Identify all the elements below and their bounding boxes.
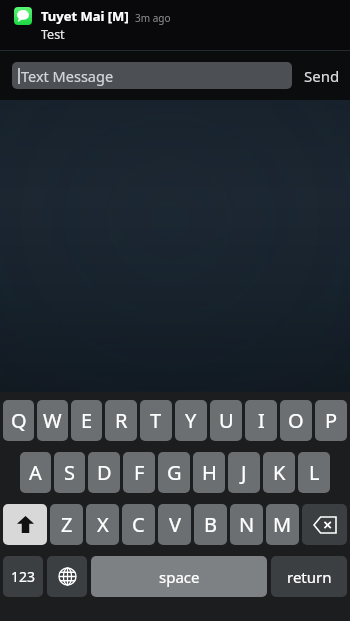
button[interactable]: 123	[3, 556, 43, 597]
button[interactable]: T	[140, 400, 172, 441]
button[interactable]: D	[88, 452, 120, 493]
staticText: Test	[41, 26, 65, 43]
staticText: A	[29, 459, 42, 486]
staticText: N	[239, 511, 255, 538]
button[interactable]: H	[193, 452, 225, 493]
staticText: F	[134, 459, 145, 486]
staticText: T	[150, 407, 162, 434]
button[interactable]: Send	[300, 60, 344, 92]
staticText: space	[159, 567, 200, 587]
staticText: I	[258, 407, 265, 434]
staticText: Send	[304, 66, 340, 86]
button[interactable]: Change keyboard	[47, 556, 87, 597]
staticText: Tuyet Mai [M]	[41, 7, 129, 25]
button[interactable]: W	[37, 400, 68, 441]
staticText: 3m ago	[135, 11, 171, 25]
button[interactable]: Text Message	[12, 62, 292, 89]
button[interactable]: X	[86, 504, 119, 545]
button[interactable]: Z	[50, 504, 83, 545]
button[interactable]: space	[91, 556, 267, 597]
button[interactable]: L	[298, 452, 330, 493]
button[interactable]: C	[122, 504, 155, 545]
button[interactable]: S	[54, 452, 85, 493]
staticText: S	[64, 459, 75, 486]
button[interactable]: M	[266, 504, 299, 545]
staticText: V	[169, 511, 181, 538]
button[interactable]: F	[123, 452, 155, 493]
button[interactable]: R	[105, 400, 137, 441]
button[interactable]: Y	[175, 400, 207, 441]
button[interactable]: return	[271, 556, 347, 597]
staticText: G	[167, 459, 182, 486]
staticText: Z	[61, 511, 73, 538]
button[interactable]: I	[245, 400, 277, 441]
staticText: return	[287, 567, 332, 587]
button[interactable]: Messages	[14, 7, 32, 25]
button[interactable]: Q	[3, 400, 34, 441]
staticText: Y	[185, 407, 197, 434]
button[interactable]: G	[158, 452, 190, 493]
staticText: R	[115, 407, 128, 434]
staticText: K	[273, 459, 286, 486]
staticText: C	[132, 511, 145, 538]
staticText: Text Message	[21, 66, 114, 86]
staticText: H	[202, 459, 217, 486]
button[interactable]: V	[158, 504, 191, 545]
button[interactable]: U	[210, 400, 242, 441]
button[interactable]: K	[263, 452, 295, 493]
staticText: Q	[11, 407, 27, 434]
staticText: W	[43, 407, 62, 434]
staticText: M	[273, 511, 292, 538]
staticText: P	[325, 407, 338, 434]
button[interactable]: J	[228, 452, 260, 493]
button[interactable]: N	[230, 504, 263, 545]
staticText: U	[219, 407, 234, 434]
button[interactable]: O	[280, 400, 312, 441]
staticText: E	[81, 407, 93, 434]
button[interactable]: A	[20, 452, 51, 493]
staticText: B	[204, 511, 217, 538]
staticText: L	[309, 459, 320, 486]
button[interactable]: P	[315, 400, 347, 441]
staticText: 123	[11, 567, 36, 586]
staticText: O	[288, 407, 304, 434]
button[interactable]: Shift	[3, 504, 47, 545]
button[interactable]: E	[71, 400, 102, 441]
staticText: J	[241, 459, 247, 486]
button[interactable]: B	[194, 504, 227, 545]
staticText: X	[97, 511, 109, 538]
staticText: D	[97, 459, 112, 486]
button[interactable]: Backspace	[302, 504, 347, 545]
